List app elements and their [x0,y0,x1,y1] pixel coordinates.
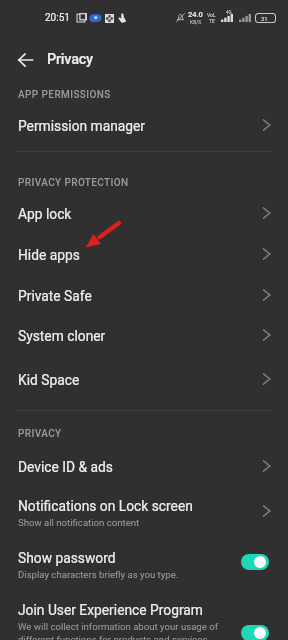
staticText: 20:51 [45,12,70,24]
staticText: TE [209,18,215,24]
staticText: Private Safe [18,288,92,304]
button[interactable]: Join User Experience Program [0,594,288,640]
staticText: Show password [18,550,116,566]
staticText: PRIVACY [18,428,62,440]
button[interactable]: Back [3,38,47,82]
button[interactable]: Notifications on Lock screen [0,490,288,532]
staticText: Hide apps [18,247,80,263]
staticText: Kid Space [18,372,80,388]
button[interactable]: Kid Space [0,359,288,399]
staticText: VoL [207,12,216,18]
staticText: Show all notification content [18,517,140,528]
staticText: 4G [226,10,232,15]
button[interactable]: Permission manager [0,105,288,145]
staticText: App lock [18,206,72,222]
button[interactable]: Private Safe [0,275,288,315]
staticText: 31 [261,15,268,22]
staticText: Join User Experience Program [18,602,203,618]
button[interactable]: Device ID & ads [0,446,288,486]
staticText: System cloner [18,328,106,344]
staticText: 24.0 [188,10,203,19]
staticText: APP PERMISSIONS [18,89,111,101]
button[interactable]: Hide apps [0,234,288,274]
staticText: Display characters briefly as you type. [18,569,179,580]
staticText: Device ID & ads [18,459,113,475]
button[interactable]: Show password [0,542,288,590]
staticText: KB/S [190,19,202,25]
staticText: Privacy [47,51,93,68]
staticText: We will collect information about your u… [18,621,226,640]
button[interactable]: System cloner [0,315,288,355]
button[interactable]: App lock [0,193,288,233]
staticText: Notifications on Lock screen [18,498,193,514]
staticText: PRIVACY PROTECTION [18,177,129,189]
staticText: Permission manager [18,118,146,134]
